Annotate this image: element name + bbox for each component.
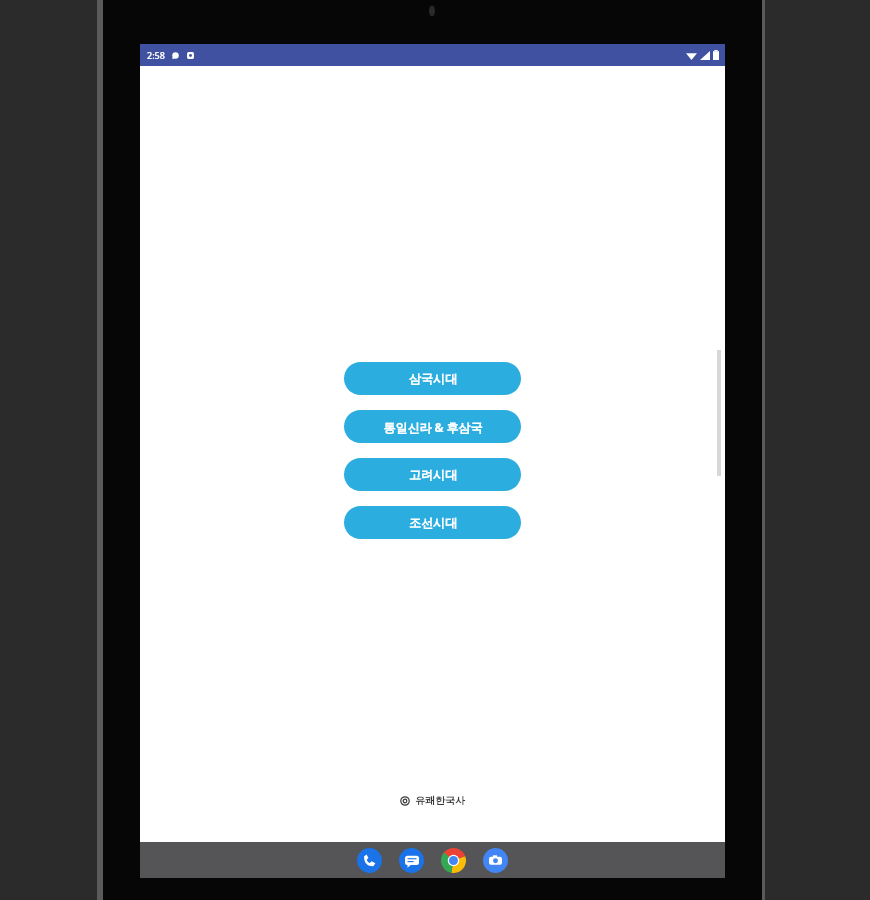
- staticText: 삼국시대: [409, 371, 457, 386]
- staticText: 고려시대: [409, 467, 457, 482]
- staticText: 통일신라 & 후삼국: [383, 419, 483, 435]
- button[interactable]: Messages: [399, 848, 424, 873]
- staticText: 유쾌한국사: [415, 794, 465, 807]
- staticText: 2:58: [147, 49, 165, 61]
- button[interactable]: 고려시대: [344, 458, 521, 491]
- button[interactable]: Camera: [483, 848, 508, 873]
- button[interactable]: 조선시대: [344, 506, 521, 539]
- button[interactable]: 삼국시대: [344, 362, 521, 395]
- button[interactable]: Chrome: [441, 848, 466, 873]
- staticText: 조선시대: [409, 515, 457, 530]
- button[interactable]: 통일신라 & 후삼국: [344, 410, 521, 443]
- button[interactable]: Phone: [357, 848, 382, 873]
